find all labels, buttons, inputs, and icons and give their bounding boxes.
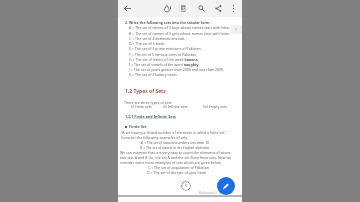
staticText: two sets A and B. So, the set A and the … — [120, 155, 232, 160]
button[interactable]: Display options — [160, 0, 174, 17]
staticText: B = The set of vowels in the English alp… — [140, 145, 210, 150]
staticText: 2. Write the following sets into the tab… — [125, 20, 211, 25]
staticText: K = The set of 3 bakery items. — [129, 72, 178, 77]
button[interactable]: Search — [194, 0, 208, 17]
staticText: A = The set of names of 3 boys whose nam… — [129, 25, 231, 30]
staticText: B = The set of names of 3 girls whose na… — [129, 31, 230, 36]
staticText: G = The set of letters of the word banan… — [129, 57, 199, 62]
staticText: (i) Finite sets — [131, 104, 152, 109]
staticText: "A set having a finited number of elemen… — [121, 130, 227, 135]
staticText: D = The set of the hair of your head — [147, 170, 206, 175]
staticText: Consider the following examples of sets. — [121, 135, 189, 140]
button[interactable]: Page 5 of document — [181, 181, 191, 191]
staticText: D = The set of 5 birds. — [129, 41, 166, 46]
staticText: 1.2.1 Finite and Infinite Sets — [125, 114, 176, 119]
staticText: 1.2 Types of Sets — [125, 88, 166, 95]
staticText: F = The set of 5 famous cities of Pakist… — [129, 52, 198, 57]
staticText: C = The set of 4 domestic animals. — [129, 36, 186, 41]
staticText: J = The set of years greater than 2006 a… — [129, 67, 225, 72]
button[interactable]: Scroll to page — [231, 25, 242, 34]
staticText: E = The set of 3 prime ministers of Paki… — [129, 46, 202, 51]
staticText: 5 — [235, 27, 238, 32]
staticText: (iii) Empty sets — [203, 104, 227, 109]
button[interactable]: Back — [120, 0, 134, 17]
staticText: I = The set of vowels of the word naught… — [129, 62, 200, 67]
button[interactable]: Share — [211, 0, 225, 17]
staticText: 5 — [185, 183, 188, 189]
staticText: There are three types of sets — [124, 100, 172, 105]
staticText: A = The set of natural numbers less than… — [141, 140, 210, 145]
staticText: Finite Set — [129, 124, 147, 129]
button[interactable]: More options — [226, 0, 240, 17]
staticText: (ii) Infinite sets — [163, 104, 188, 109]
staticText: Mathematics 6 Unit 1: Sets — [199, 191, 233, 195]
staticText: We can examine that it is very easy to c… — [120, 150, 231, 155]
button[interactable]: Reading view — [176, 0, 190, 17]
staticText: C = The set of population of Pakistan — [148, 165, 209, 170]
staticText: consider some more examples of sets whic… — [120, 160, 222, 165]
button[interactable]: Edit — [217, 177, 235, 195]
